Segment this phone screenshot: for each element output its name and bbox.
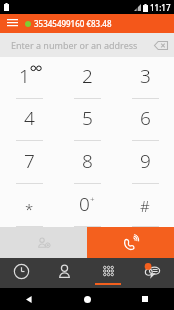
button[interactable]: Home: [58, 288, 116, 310]
button[interactable]: Contacts: [43, 258, 86, 288]
button[interactable]: 3: [116, 57, 174, 99]
button[interactable]: 4: [0, 99, 58, 141]
button[interactable]: Backspace: [148, 33, 174, 57]
button[interactable]: Back: [0, 288, 58, 310]
staticText: 9: [140, 148, 151, 174]
staticText: +: [90, 193, 95, 204]
button[interactable]: 1: [0, 57, 58, 99]
button[interactable]: Recents: [0, 258, 43, 288]
button[interactable]: 9: [116, 141, 174, 184]
button[interactable]: *: [0, 184, 58, 227]
button[interactable]: 5: [58, 99, 116, 141]
button[interactable]: 8: [58, 141, 116, 184]
staticText: 8: [82, 148, 93, 174]
button[interactable]: 6: [116, 99, 174, 141]
staticText: 11:17: [150, 2, 171, 13]
button[interactable]: Messages: [130, 258, 174, 288]
button[interactable]: Recents: [116, 288, 174, 310]
button[interactable]: 2: [58, 57, 116, 99]
staticText: #: [140, 196, 150, 216]
button[interactable]: #: [116, 184, 174, 227]
button[interactable]: Keypad: [86, 258, 130, 288]
staticText: 3: [140, 63, 151, 89]
staticText: 6: [140, 105, 151, 131]
staticText: 7: [24, 148, 35, 174]
button[interactable]: Menu: [0, 14, 25, 33]
staticText: 0: [79, 191, 90, 217]
button[interactable]: 0: [58, 184, 116, 227]
button[interactable]: Call: [87, 227, 174, 258]
staticText: 5: [82, 105, 93, 131]
button[interactable]: 7: [0, 141, 58, 184]
staticText: 4: [24, 105, 35, 131]
staticText: 35345499160 €83.48: [34, 18, 112, 29]
staticText: 1: [19, 63, 30, 89]
button[interactable]: Enter a number or an address: [0, 33, 174, 57]
staticText: Enter a number or an address: [11, 39, 138, 51]
staticText: 2: [82, 63, 93, 89]
staticText: *: [25, 199, 34, 219]
